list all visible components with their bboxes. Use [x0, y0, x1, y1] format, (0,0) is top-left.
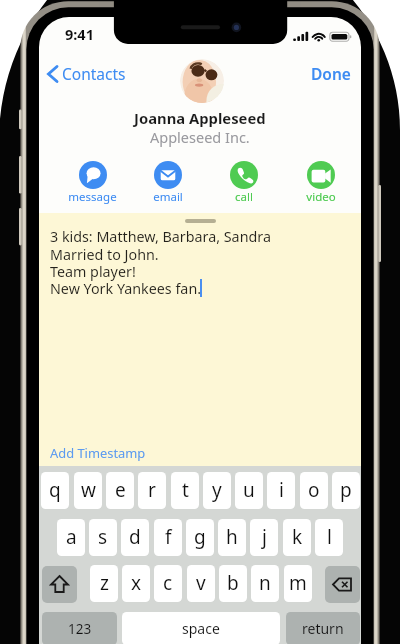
button[interactable]: k	[283, 519, 311, 556]
button[interactable]: t	[171, 472, 199, 509]
button[interactable]: u	[235, 472, 263, 509]
staticText: o	[308, 477, 320, 503]
staticText: u	[243, 477, 255, 503]
button[interactable]: space	[122, 612, 280, 644]
button[interactable]: l	[315, 519, 343, 556]
button[interactable]: b	[219, 565, 247, 602]
button[interactable]: a	[57, 519, 85, 556]
staticText: i	[279, 477, 284, 503]
button[interactable]: Contacts	[45, 61, 128, 86]
staticText: n	[259, 570, 271, 596]
staticText: Contacts	[62, 63, 126, 84]
staticText: q	[49, 477, 61, 503]
button[interactable]: Done	[309, 61, 353, 86]
staticText: call	[235, 189, 253, 205]
button[interactable]: e	[106, 472, 134, 509]
staticText: r	[148, 477, 156, 503]
staticText: m	[289, 570, 307, 596]
button[interactable]: c	[154, 565, 182, 602]
button[interactable]: p	[332, 472, 360, 509]
staticText: e	[115, 477, 126, 503]
button[interactable]: m	[284, 565, 312, 602]
button[interactable]: i	[267, 472, 295, 509]
button[interactable]: y	[203, 472, 231, 509]
button[interactable]: return	[286, 612, 360, 644]
staticText: s	[98, 524, 108, 550]
button[interactable]: call	[210, 161, 278, 205]
button[interactable]: message	[58, 161, 126, 205]
button[interactable]: Delete	[325, 566, 360, 603]
staticText: video	[306, 189, 336, 205]
staticText: b	[227, 570, 239, 596]
staticText: Joanna Appleseed	[134, 108, 266, 128]
button[interactable]: Shift	[42, 566, 77, 603]
button[interactable]: x	[122, 565, 150, 602]
button[interactable]: w	[74, 472, 102, 509]
staticText: k	[292, 524, 303, 550]
staticText: v	[196, 570, 206, 596]
staticText: email	[153, 189, 183, 205]
button[interactable]: Add Timestamp	[49, 443, 147, 463]
button[interactable]: q	[41, 472, 69, 509]
button[interactable]: g	[186, 519, 214, 556]
staticText: 9:41	[65, 24, 94, 44]
staticText: a	[66, 524, 77, 550]
staticText: Appleseed Inc.	[150, 127, 250, 147]
staticText: y	[212, 477, 222, 503]
staticText: return	[302, 619, 344, 638]
button[interactable]: n	[251, 565, 279, 602]
button[interactable]: s	[89, 519, 117, 556]
button[interactable]: r	[138, 472, 166, 509]
button[interactable]: j	[250, 519, 278, 556]
button[interactable]: email	[134, 161, 202, 205]
staticText: x	[131, 570, 142, 596]
staticText: Add Timestamp	[50, 444, 146, 462]
staticText: 123	[68, 620, 92, 638]
staticText: t	[182, 477, 189, 503]
staticText: g	[194, 524, 206, 550]
button[interactable]: 123	[42, 612, 117, 644]
staticText: Done	[311, 63, 351, 84]
staticText: z	[100, 570, 109, 596]
staticText: f	[165, 524, 172, 550]
button[interactable]: o	[300, 472, 328, 509]
button[interactable]: video	[287, 161, 355, 205]
button[interactable]: h	[218, 519, 246, 556]
button[interactable]: z	[90, 565, 118, 602]
staticText: j	[262, 524, 267, 550]
staticText: h	[226, 524, 238, 550]
staticText: p	[340, 477, 352, 503]
button[interactable]: v	[187, 565, 215, 602]
button[interactable]: f	[154, 519, 182, 556]
button[interactable]	[180, 59, 224, 103]
staticText: w	[81, 477, 96, 503]
staticText: message	[68, 189, 117, 205]
button[interactable]: d	[121, 519, 149, 556]
staticText: 3 kids: Matthew, Barbara, Sandra Married…	[50, 227, 271, 298]
staticText: space	[182, 619, 220, 638]
staticText: l	[327, 524, 332, 550]
staticText: d	[129, 524, 141, 550]
staticText: c	[163, 570, 173, 596]
